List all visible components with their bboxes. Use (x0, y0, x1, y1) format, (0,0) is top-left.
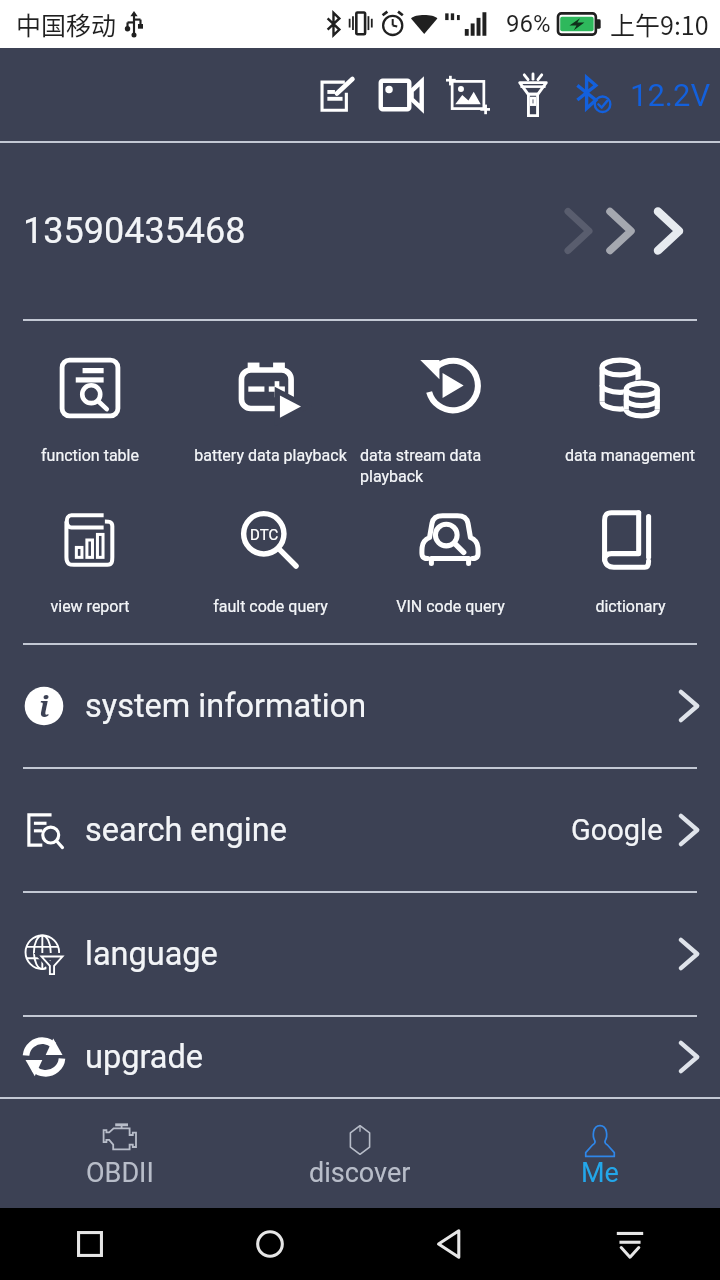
staticText: OBDII (86, 1157, 154, 1189)
staticText: DTC (250, 526, 279, 544)
button[interactable]: search engine (0, 769, 720, 891)
staticText: 上午9:10 (610, 6, 709, 42)
button[interactable]: 13590435468 (0, 143, 720, 319)
staticText: VIN code query (396, 597, 505, 616)
staticText: dictionary (595, 597, 666, 616)
button[interactable]: Screenshot (436, 48, 500, 141)
staticText: data management (565, 446, 695, 465)
button[interactable]: Me (480, 1099, 720, 1208)
button[interactable]: Hide keyboard (540, 1208, 720, 1280)
staticText: discover (309, 1157, 411, 1189)
button[interactable]: view report (0, 482, 180, 643)
button[interactable]: data stream data playback (360, 321, 540, 482)
button[interactable]: OBDII (0, 1099, 240, 1208)
staticText: 13590435468 (23, 210, 246, 252)
button[interactable]: dictionary (540, 482, 720, 643)
button[interactable]: Bluetooth connected (563, 48, 627, 141)
staticText: 12.2V (630, 77, 711, 113)
staticText: 96% (506, 10, 551, 38)
button[interactable]: Back (360, 1208, 540, 1280)
staticText: Me (581, 1157, 619, 1189)
button[interactable]: Home (180, 1208, 360, 1280)
button[interactable]: DTC (180, 482, 360, 643)
staticText: function table (41, 446, 139, 465)
staticText: i (39, 686, 50, 725)
button[interactable]: Record video (369, 48, 433, 141)
staticText: upgrade (85, 1038, 204, 1076)
button[interactable]: 12.2V (630, 48, 711, 141)
staticText: fault code query (213, 597, 328, 616)
staticText: 中国移动 (16, 6, 117, 42)
button[interactable]: upgrade (0, 1017, 720, 1097)
staticText: language (85, 935, 218, 973)
button[interactable]: i (0, 645, 720, 767)
button[interactable]: New note (306, 48, 370, 141)
staticText: data stream data playback (360, 446, 540, 486)
staticText: view report (50, 597, 130, 616)
button[interactable]: discover (240, 1099, 480, 1208)
button[interactable]: Flashlight (501, 48, 565, 141)
staticText: search engine (85, 811, 287, 849)
staticText: battery data playback (194, 446, 347, 465)
button[interactable]: function table (0, 321, 180, 482)
staticText: Google (571, 813, 663, 847)
button[interactable]: battery data playback (180, 321, 360, 482)
staticText: system information (85, 687, 367, 725)
button[interactable]: VIN code query (360, 482, 540, 643)
button[interactable]: Recents (0, 1208, 180, 1280)
button[interactable]: language (0, 893, 720, 1015)
button[interactable]: data management (540, 321, 720, 482)
